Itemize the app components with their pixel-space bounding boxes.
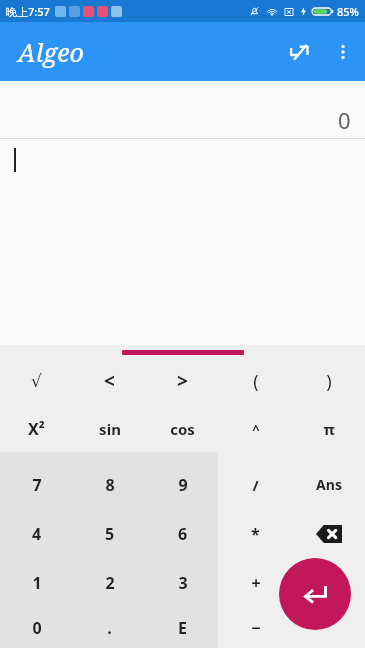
button[interactable] (292, 607, 365, 648)
button[interactable]: sin (73, 405, 146, 453)
button[interactable]: * (219, 509, 292, 558)
staticText: / (252, 475, 259, 495)
button[interactable]: √ (0, 357, 73, 405)
staticText: < (104, 368, 115, 394)
button[interactable]: π (292, 405, 365, 453)
staticText: 3 (178, 572, 188, 594)
staticText: E (178, 617, 187, 639)
button[interactable]: − (219, 607, 292, 648)
staticText: 6 (178, 523, 188, 545)
button[interactable] (292, 558, 365, 607)
staticText: cos (170, 419, 195, 439)
staticText: π (323, 419, 335, 439)
button[interactable]: 3 (146, 558, 219, 607)
button[interactable]: ) (292, 357, 365, 405)
button[interactable]: More options (321, 30, 365, 74)
button[interactable]: > (146, 357, 219, 405)
button[interactable]: cos (146, 405, 219, 453)
staticText: 1 (32, 572, 42, 594)
staticText: 0 (32, 617, 42, 639)
button[interactable]: < (73, 357, 146, 405)
button[interactable]: 2 (73, 558, 146, 607)
staticText: X² (28, 418, 45, 440)
button[interactable]: ( (219, 357, 292, 405)
staticText: sin (99, 419, 121, 439)
staticText: 85% (337, 4, 359, 19)
button[interactable]: Ans (292, 460, 365, 509)
staticText: 2 (105, 572, 115, 594)
button[interactable]: ^ (219, 405, 292, 453)
staticText: ( (253, 369, 259, 394)
staticText: * (251, 523, 260, 545)
button[interactable]: + (219, 558, 292, 607)
button[interactable]: 7 (0, 460, 73, 509)
staticText: √ (31, 371, 42, 391)
staticText: + (251, 572, 261, 594)
staticText: Ans (316, 475, 342, 494)
staticText: 4 (32, 523, 42, 545)
button[interactable]: 5 (73, 509, 146, 558)
button[interactable]: Backspace (292, 509, 365, 558)
button[interactable]: . (73, 607, 146, 648)
staticText: Algeo (18, 35, 84, 69)
button[interactable]: Evaluate (279, 558, 351, 630)
staticText: ^ (252, 420, 260, 438)
button[interactable]: X² (0, 405, 73, 453)
button[interactable]: 8 (73, 460, 146, 509)
staticText: − (251, 617, 261, 639)
button[interactable]: 1 (0, 558, 73, 607)
staticText: 0 (338, 105, 351, 135)
staticText: ) (326, 369, 332, 394)
staticText: > (177, 368, 188, 394)
button[interactable]: / (219, 460, 292, 509)
button[interactable]: 9 (146, 460, 219, 509)
staticText: 5 (105, 523, 115, 545)
button[interactable]: E (146, 607, 219, 648)
staticText: 7 (32, 474, 42, 496)
button[interactable]: 4 (0, 509, 73, 558)
staticText: 晚上7:57 (6, 4, 50, 19)
staticText: . (107, 617, 112, 639)
button[interactable]: 0 (0, 607, 73, 648)
button[interactable]: Resize keypad (122, 350, 244, 355)
staticText: 8 (105, 474, 115, 496)
button[interactable]: 6 (146, 509, 219, 558)
button[interactable]: Graph function (277, 30, 321, 74)
staticText: 9 (178, 474, 188, 496)
